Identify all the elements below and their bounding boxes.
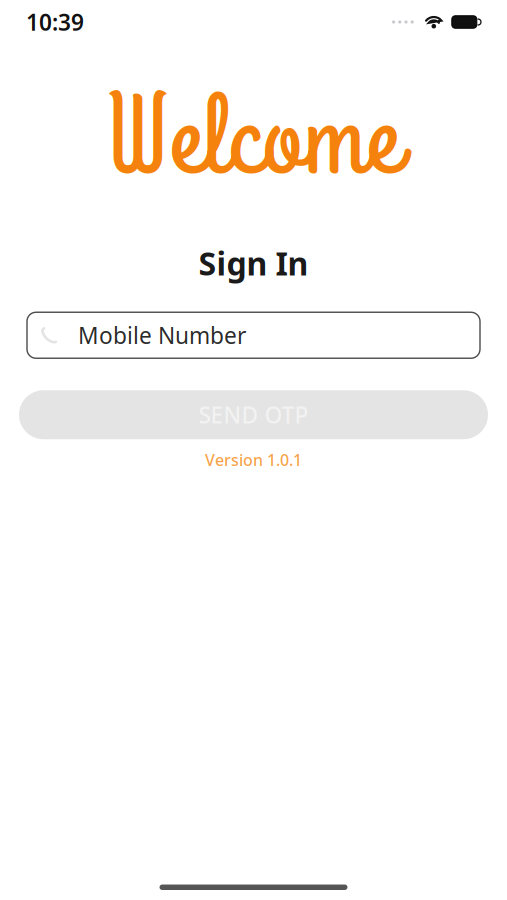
staticText: Version 1.0.1: [205, 449, 302, 470]
staticText: SEND OTP: [198, 400, 308, 430]
staticText: Mobile Number: [78, 320, 246, 350]
staticText: Welcome: [106, 62, 400, 218]
staticText: Sign In: [198, 242, 308, 284]
staticText: 10:39: [26, 7, 84, 37]
button[interactable]: SEND OTP: [19, 390, 488, 439]
